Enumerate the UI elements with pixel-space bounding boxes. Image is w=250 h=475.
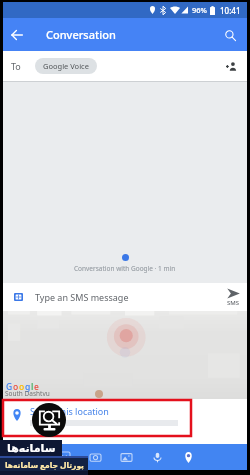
staticText: To xyxy=(11,60,21,72)
button[interactable]: Add people xyxy=(218,53,244,79)
staticText: o xyxy=(19,381,25,393)
button[interactable]: Back xyxy=(3,21,31,49)
staticText: o xyxy=(13,381,19,393)
button[interactable]: Google Voice xyxy=(35,58,97,74)
staticText: SMS xyxy=(227,299,240,307)
button[interactable]: Gallery xyxy=(111,444,142,470)
staticText: g xyxy=(25,381,31,393)
button[interactable]: Stickers xyxy=(49,444,80,470)
staticText: سامانه‌ها xyxy=(7,442,56,455)
staticText: Conversation xyxy=(46,27,116,42)
staticText: 96% xyxy=(192,5,207,15)
staticText: پورتال جامع سامانه‌ها xyxy=(5,460,84,470)
button[interactable]: Emoji xyxy=(18,444,49,470)
button[interactable]: Location xyxy=(173,444,204,470)
staticText: Select this location xyxy=(30,405,109,417)
button[interactable]: Voice xyxy=(142,444,173,470)
button[interactable]: Search xyxy=(216,21,244,49)
staticText: e xyxy=(34,381,39,393)
staticText: 10:41 xyxy=(220,5,241,16)
staticText: G xyxy=(6,381,13,393)
button[interactable]: Select this location xyxy=(3,401,247,429)
button[interactable]: Camera xyxy=(80,444,111,470)
staticText: Conversation with Google · 1 min xyxy=(74,264,176,273)
button[interactable]: Send SMS xyxy=(220,285,247,310)
staticText: Type an SMS message xyxy=(35,291,129,303)
staticText: l xyxy=(31,381,34,393)
staticText: South Dashtvu xyxy=(5,389,50,398)
staticText: Google Voice xyxy=(43,61,89,71)
